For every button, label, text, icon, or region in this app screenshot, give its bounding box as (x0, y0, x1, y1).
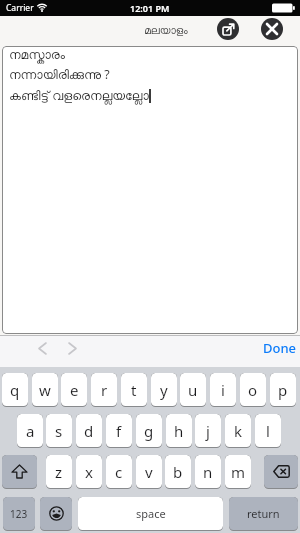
staticText: കണ്ടിട്ട് വളരെനല്ലയല്ലോ (9, 87, 149, 104)
button[interactable]: c (106, 455, 132, 489)
staticText: p (278, 380, 288, 400)
button[interactable]: g (136, 414, 162, 448)
button[interactable]: t (121, 373, 147, 407)
staticText: t (131, 380, 137, 400)
staticText: m (231, 462, 246, 482)
button[interactable]: k (225, 414, 251, 448)
button[interactable]: s (46, 414, 72, 448)
button[interactable]: 123 (3, 497, 35, 531)
button[interactable]: v (136, 455, 162, 489)
staticText: നന്നായിരിക്കുന്നു ? (9, 66, 110, 83)
button[interactable]: m (225, 455, 251, 489)
button[interactable] (261, 18, 283, 40)
button[interactable]: o (240, 373, 266, 407)
button[interactable]: q (2, 373, 28, 407)
staticText: f (116, 421, 122, 441)
button[interactable]: a (17, 414, 43, 448)
staticText: s (55, 421, 63, 441)
button[interactable]: z (46, 455, 72, 489)
staticText: n (203, 462, 213, 482)
staticText: e (70, 380, 79, 400)
staticText: r (101, 380, 108, 400)
staticText: h (174, 421, 184, 441)
staticText: Done (263, 339, 297, 357)
staticText: l (266, 421, 270, 441)
staticText: space (136, 506, 166, 521)
staticText: x (85, 462, 93, 482)
button[interactable]: d (76, 414, 102, 448)
staticText: o (248, 380, 258, 400)
button[interactable]: return (229, 497, 298, 531)
staticText: നമസ്കാരം (9, 49, 65, 62)
button[interactable]: r (91, 373, 117, 407)
staticText: q (10, 380, 20, 400)
staticText: d (84, 421, 94, 441)
staticText: j (206, 421, 210, 441)
staticText: c (115, 462, 123, 482)
staticText: Carrier (6, 2, 34, 14)
button[interactable]: f (106, 414, 132, 448)
staticText: z (55, 462, 63, 482)
staticText: return (247, 506, 280, 521)
staticText: i (221, 380, 225, 400)
button[interactable]: e (61, 373, 87, 407)
staticText: g (144, 421, 154, 441)
button[interactable]: y (151, 373, 177, 407)
button[interactable]: i (210, 373, 236, 407)
button[interactable] (2, 455, 37, 489)
button[interactable]: l (255, 414, 281, 448)
button[interactable]: നമസ്കാരം (2, 46, 298, 334)
button[interactable]: b (165, 455, 191, 489)
staticText: v (145, 462, 153, 482)
staticText: a (26, 421, 35, 441)
staticText: y (160, 380, 168, 400)
staticText: മലയാളം (16, 26, 300, 37)
button[interactable] (30, 336, 54, 360)
button[interactable] (264, 455, 298, 489)
staticText: b (173, 462, 183, 482)
button[interactable]: p (270, 373, 296, 407)
button[interactable]: n (195, 455, 221, 489)
button[interactable]: x (76, 455, 102, 489)
button[interactable]: space (78, 497, 223, 531)
button[interactable]: Done (260, 336, 300, 360)
button[interactable]: h (166, 414, 192, 448)
button[interactable] (40, 497, 72, 531)
button[interactable]: u (180, 373, 206, 407)
button[interactable]: j (195, 414, 221, 448)
staticText: u (188, 380, 198, 400)
button[interactable] (60, 336, 84, 360)
button[interactable] (217, 18, 239, 40)
staticText: k (234, 421, 243, 441)
staticText: 12:01 PM (130, 2, 170, 14)
staticText: 123 (10, 507, 28, 521)
button[interactable]: w (32, 373, 58, 407)
staticText: w (39, 380, 51, 400)
